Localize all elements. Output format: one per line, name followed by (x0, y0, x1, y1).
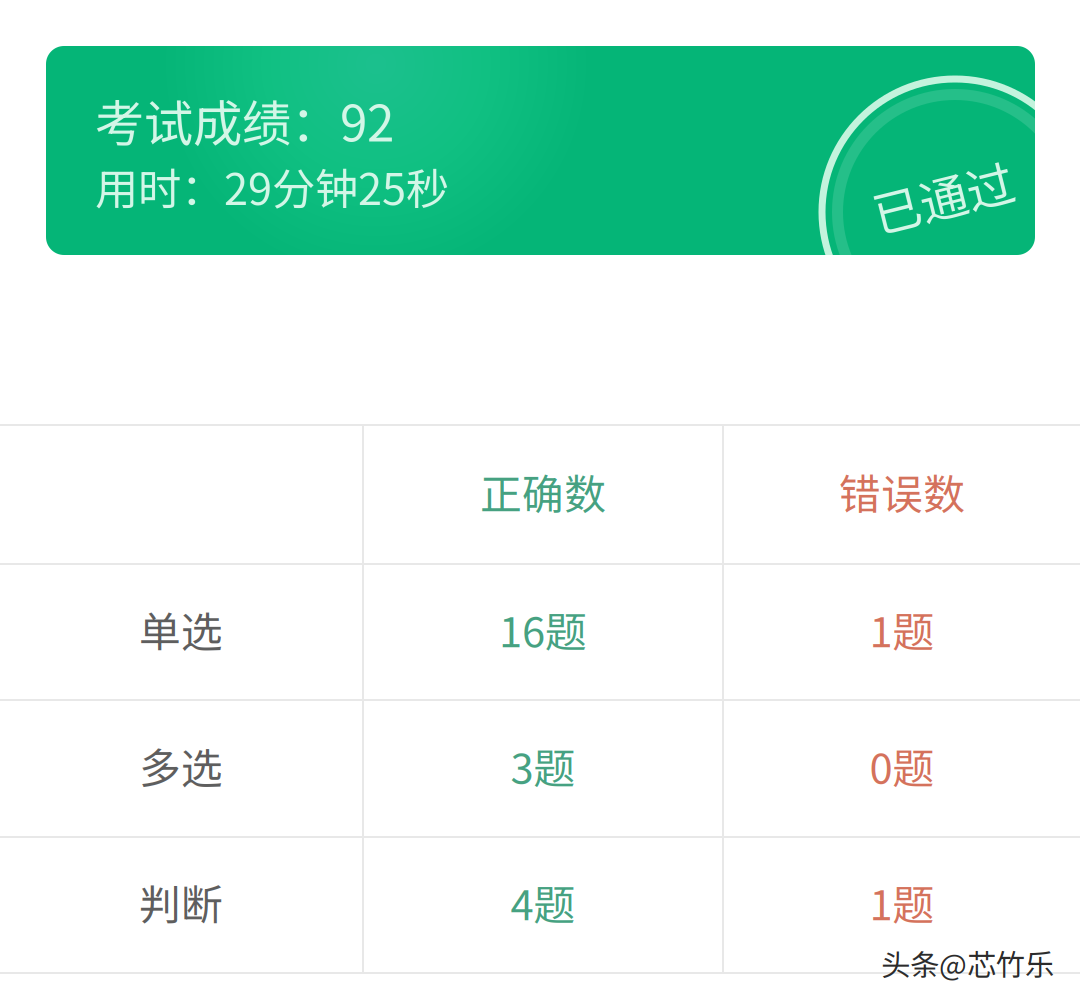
staticText: 判断 (139, 872, 223, 932)
staticText: 用时：29分钟25秒 (95, 155, 449, 217)
staticText: 头条@芯竹乐 (881, 942, 1054, 984)
button[interactable] (0, 426, 1080, 563)
button[interactable]: 判断 (0, 838, 1080, 972)
staticText: 正确数 (480, 461, 606, 522)
staticText: 1题 (869, 599, 934, 659)
staticText: 已通过 (871, 161, 1015, 231)
staticText: 单选 (139, 599, 223, 659)
staticText: 16题 (499, 599, 587, 659)
staticText: 多选 (139, 735, 223, 796)
button[interactable]: 已通过 (46, 46, 1035, 255)
staticText: 考试成绩：92 (95, 84, 394, 156)
staticText: 3题 (510, 735, 575, 796)
button[interactable]: 单选 (0, 565, 1080, 699)
staticText: 错误数 (839, 461, 965, 522)
staticText: 4题 (510, 872, 575, 932)
button[interactable]: 多选 (0, 701, 1080, 836)
staticText: 0题 (869, 735, 934, 796)
staticText: 1题 (869, 872, 934, 932)
